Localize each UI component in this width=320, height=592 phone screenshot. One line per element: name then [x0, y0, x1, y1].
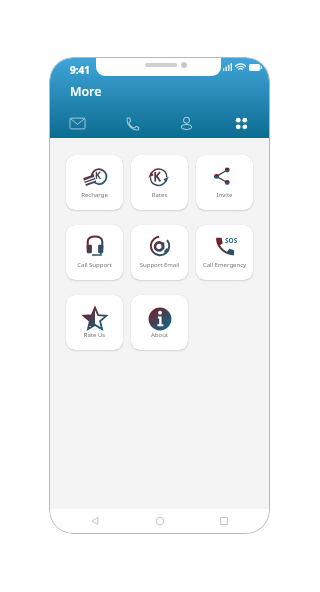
- button[interactable]: Recents: [219, 516, 229, 526]
- staticText: Rates: [131, 191, 188, 199]
- button[interactable]: Invite: [196, 155, 253, 210]
- button[interactable]: Call Support: [66, 225, 123, 280]
- staticText: 9:41: [70, 63, 90, 77]
- button[interactable]: Home: [155, 516, 165, 526]
- button[interactable]: Recharge: [66, 155, 123, 210]
- button[interactable]: Back: [90, 516, 100, 526]
- button[interactable]: Messages: [50, 108, 104, 138]
- button[interactable]: SOS: [196, 225, 253, 280]
- staticText: Call Support: [66, 261, 123, 269]
- button[interactable]: About: [131, 295, 188, 350]
- button[interactable]: Profile: [159, 108, 214, 138]
- staticText: Rate Us: [66, 331, 123, 339]
- staticText: More: [70, 83, 102, 100]
- button[interactable]: Rate Us: [66, 295, 123, 350]
- staticText: Recharge: [66, 191, 123, 199]
- staticText: Support Email: [131, 261, 188, 269]
- button[interactable]: Calls: [104, 108, 159, 138]
- button[interactable]: More: [214, 108, 269, 138]
- staticText: Invite: [196, 191, 253, 199]
- button[interactable]: Support Email: [131, 225, 188, 280]
- staticText: Call Emergency: [196, 261, 253, 269]
- staticText: About: [131, 331, 188, 339]
- button[interactable]: Rates: [131, 155, 188, 210]
- staticText: SOS: [225, 236, 238, 245]
